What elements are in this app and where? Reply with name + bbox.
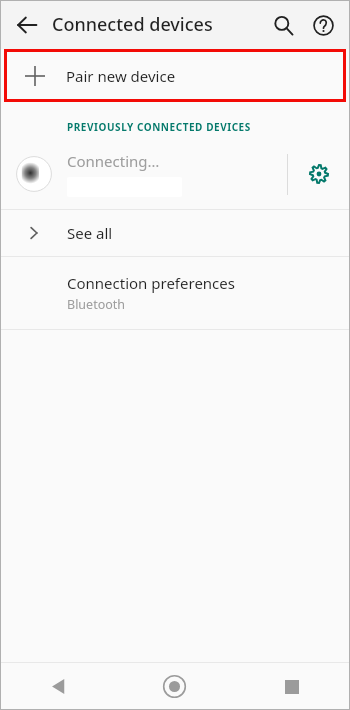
button[interactable]: See all bbox=[0, 210, 350, 256]
staticText: See all bbox=[67, 223, 113, 243]
button[interactable]: Home bbox=[116, 663, 233, 710]
staticText: Connected devices bbox=[52, 12, 213, 37]
staticText: PREVIOUSLY CONNECTED DEVICES bbox=[67, 120, 251, 134]
button[interactable]: Connecting… bbox=[0, 139, 350, 209]
button[interactable]: Search bbox=[263, 5, 303, 45]
button[interactable]: Recent apps bbox=[233, 663, 350, 710]
staticText: Bluetooth bbox=[67, 296, 126, 313]
button[interactable]: Back bbox=[9, 7, 45, 43]
button[interactable]: Connection preferences bbox=[0, 257, 350, 329]
staticText: Connecting… bbox=[67, 151, 160, 171]
button[interactable]: Device settings bbox=[288, 139, 350, 209]
button[interactable]: Help bbox=[303, 5, 343, 45]
staticText: Pair new device bbox=[66, 66, 176, 86]
button[interactable]: Pair new device bbox=[4, 49, 346, 102]
staticText: Connection preferences bbox=[67, 273, 235, 293]
button[interactable]: Back bbox=[0, 663, 116, 710]
